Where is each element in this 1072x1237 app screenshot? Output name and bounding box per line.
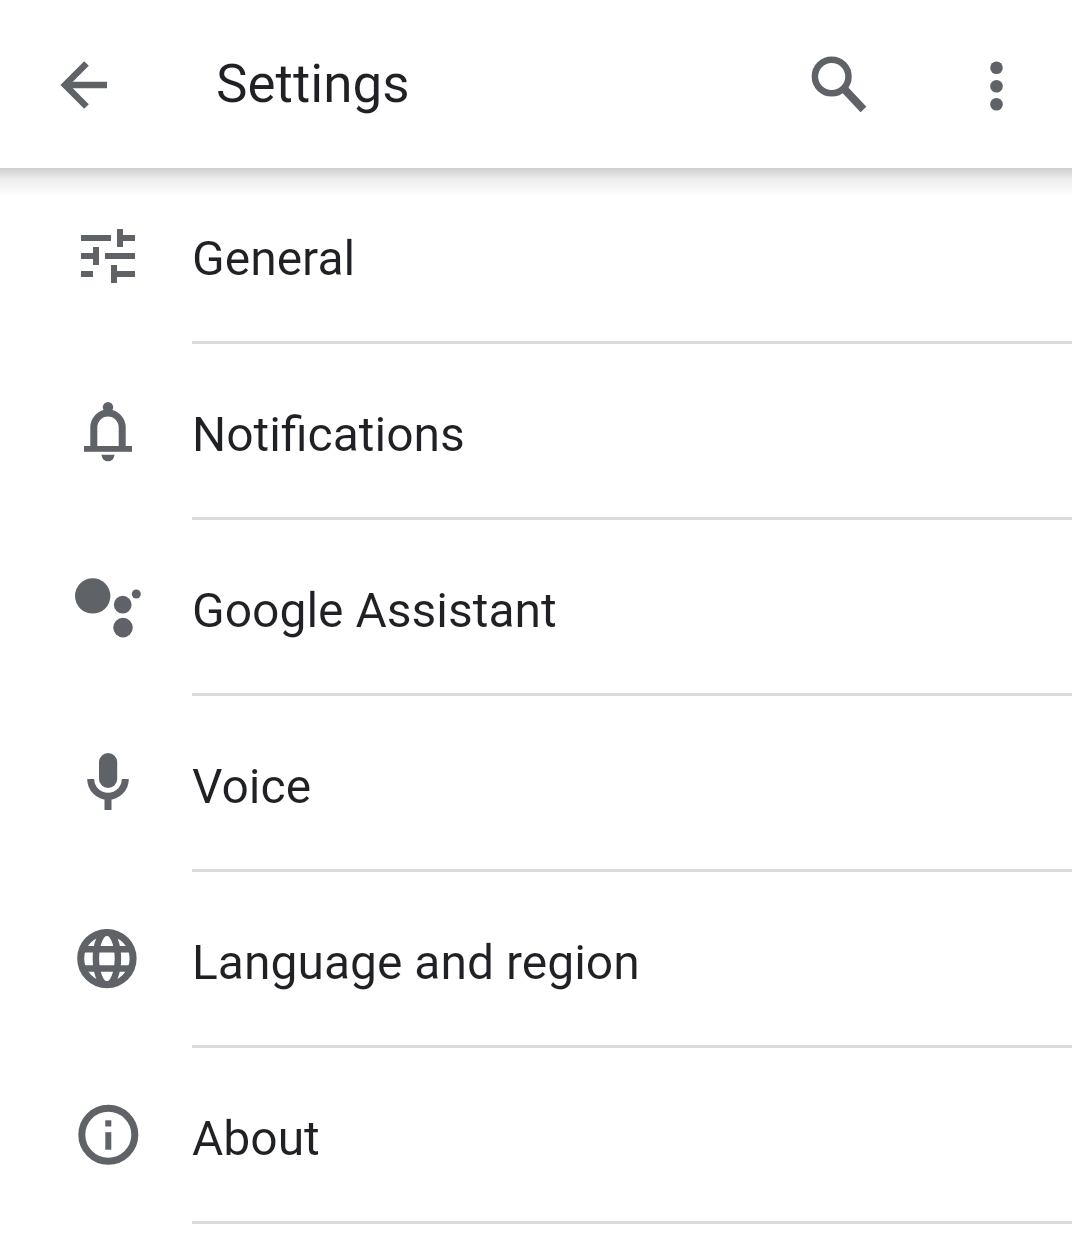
button[interactable]: Language and region bbox=[0, 872, 1072, 1048]
button[interactable]: Google Assistant bbox=[0, 520, 1072, 696]
button[interactable]: Voice bbox=[0, 696, 1072, 872]
button[interactable] bbox=[960, 49, 1032, 121]
staticText: Voice bbox=[192, 758, 312, 814]
staticText: Settings bbox=[216, 53, 410, 115]
button[interactable]: About bbox=[0, 1048, 1072, 1224]
staticText: About bbox=[192, 1110, 320, 1166]
button[interactable] bbox=[48, 49, 120, 121]
button[interactable]: General bbox=[0, 168, 1072, 344]
staticText: Notifications bbox=[192, 406, 465, 462]
button[interactable]: Notifications bbox=[0, 344, 1072, 520]
button[interactable] bbox=[802, 49, 874, 121]
staticText: General bbox=[192, 230, 356, 286]
staticText: Language and region bbox=[192, 934, 640, 990]
staticText: Google Assistant bbox=[192, 582, 557, 638]
